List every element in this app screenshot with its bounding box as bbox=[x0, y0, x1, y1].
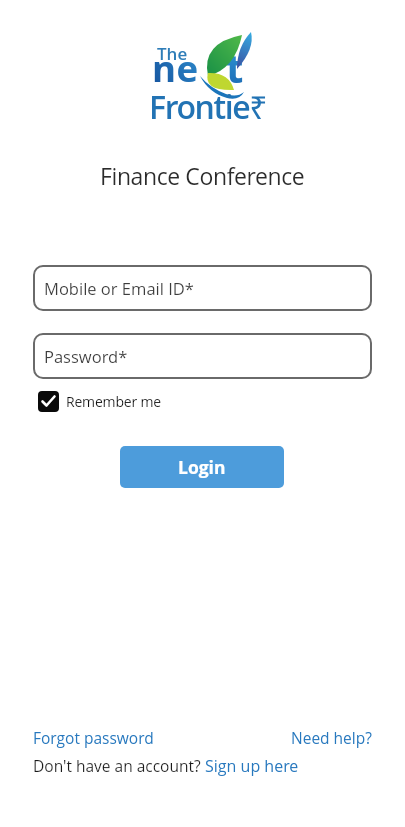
button[interactable]: Forgot password bbox=[33, 727, 154, 748]
button[interactable]: Mobile or Email ID* bbox=[33, 265, 372, 311]
staticText: Mobile or Email ID* bbox=[44, 277, 194, 299]
staticText: The bbox=[157, 42, 188, 65]
button[interactable]: Login bbox=[120, 446, 284, 488]
staticText: Frontie₹ bbox=[149, 85, 267, 129]
staticText: Remember me bbox=[66, 392, 161, 411]
staticText: Don't have an account? bbox=[33, 755, 205, 776]
staticText: t bbox=[226, 40, 244, 94]
button[interactable]: Remember me bbox=[38, 391, 161, 412]
button[interactable]: Sign up here bbox=[205, 755, 299, 777]
staticText: Password* bbox=[44, 345, 128, 367]
button[interactable]: Need help? bbox=[291, 727, 372, 748]
staticText: Login bbox=[178, 455, 226, 479]
staticText: Finance Conference bbox=[100, 160, 305, 191]
button[interactable]: Password* bbox=[33, 333, 372, 379]
staticText: ne bbox=[152, 43, 199, 93]
